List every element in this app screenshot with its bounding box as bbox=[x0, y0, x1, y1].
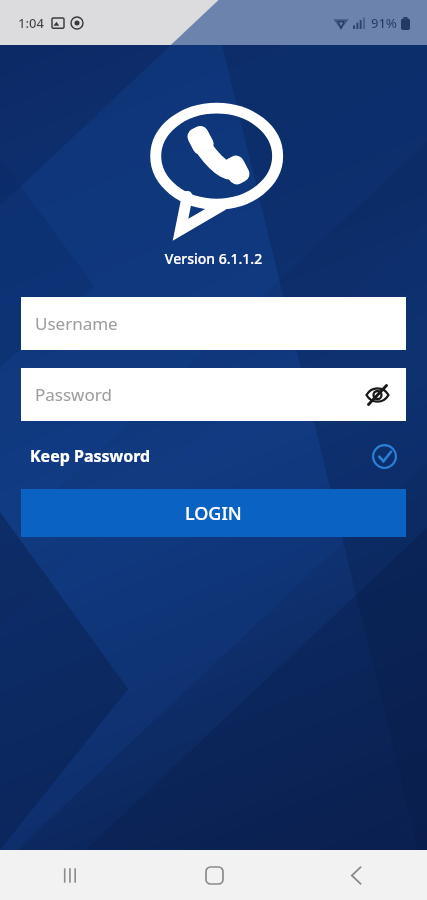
button[interactable]: Keep Password bbox=[21, 437, 406, 475]
button[interactable]: Password bbox=[21, 368, 406, 421]
staticText: 1:04 bbox=[18, 14, 44, 32]
staticText: Password bbox=[35, 383, 112, 406]
button[interactable]: Home bbox=[143, 850, 285, 900]
button[interactable]: Recents bbox=[0, 850, 143, 900]
staticText: 91% bbox=[371, 14, 397, 32]
staticText: Version 6.1.1.2 bbox=[0, 249, 427, 268]
staticText: Keep Password bbox=[30, 445, 151, 467]
staticText: Username bbox=[35, 312, 118, 335]
button[interactable]: Username bbox=[21, 297, 406, 350]
button[interactable]: Show password bbox=[360, 378, 394, 412]
button[interactable]: Back bbox=[285, 850, 427, 900]
button[interactable]: LOGIN bbox=[21, 489, 406, 537]
staticText: LOGIN bbox=[185, 501, 242, 526]
